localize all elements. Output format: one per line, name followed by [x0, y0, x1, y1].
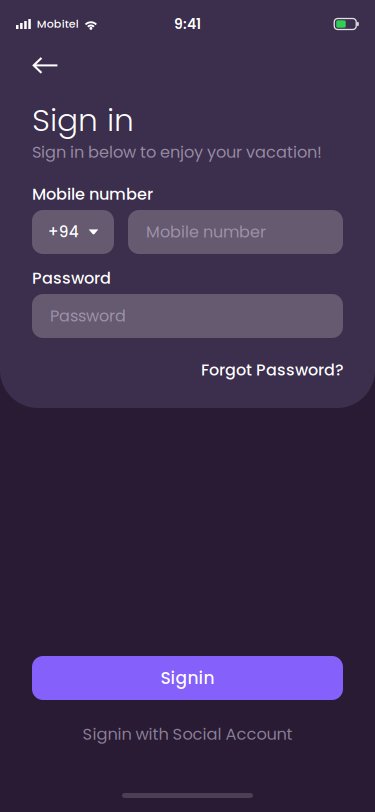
staticText: Signin with Social Account [82, 723, 292, 745]
button[interactable]: Signin with Social Account [82, 719, 292, 749]
staticText: Mobitel [37, 16, 79, 32]
staticText: Mobile number [32, 183, 153, 205]
staticText: Sign in [32, 98, 134, 142]
staticText: +94 [48, 221, 79, 243]
staticText: Forgot Password? [201, 359, 344, 381]
staticText: Password [32, 267, 111, 289]
staticText: Mobile number [146, 221, 266, 243]
staticText: 9:41 [174, 14, 201, 34]
button[interactable]: Signin [32, 656, 343, 700]
staticText: Password [50, 305, 126, 327]
button[interactable]: Forgot Password? [0, 357, 375, 383]
button[interactable]: +94 [32, 210, 114, 254]
staticText: Sign in below to enjoy your vacation! [32, 141, 322, 163]
staticText: Signin [160, 666, 214, 690]
button[interactable]: Back [0, 48, 375, 100]
